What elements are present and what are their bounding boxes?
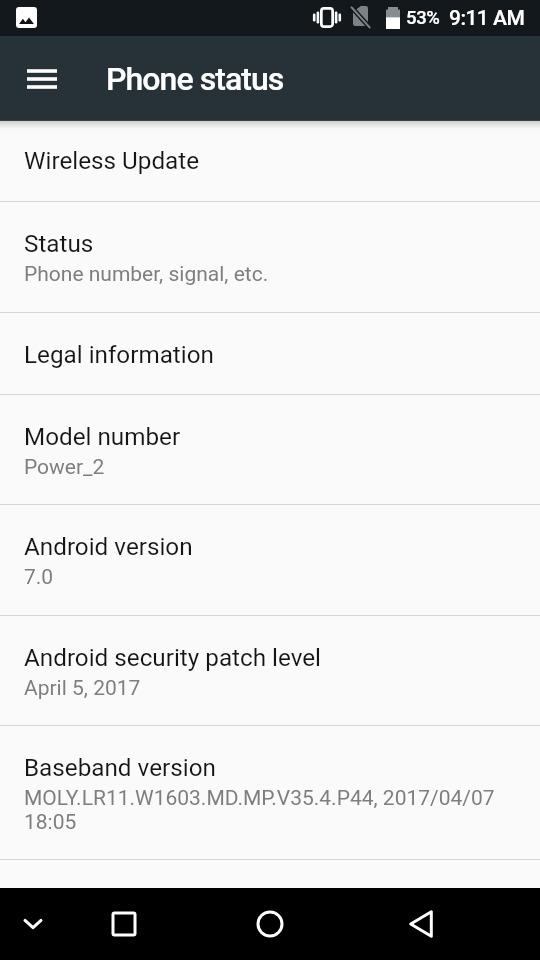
button[interactable]: Home <box>236 888 304 960</box>
staticText: April 5, 2017 <box>24 676 141 701</box>
button[interactable]: Open navigation menu <box>13 50 70 107</box>
button[interactable]: Legal information <box>0 312 540 392</box>
button[interactable]: Status <box>0 201 540 310</box>
button[interactable]: Android security patch level <box>0 615 540 723</box>
staticText: Android version <box>24 533 193 561</box>
staticText: Android security patch level <box>24 644 322 672</box>
button[interactable]: Wireless Update <box>0 120 540 200</box>
staticText: Phone number, signal, etc. <box>24 262 269 287</box>
staticText: 9:11 AM <box>449 6 525 31</box>
button[interactable]: Baseband version <box>0 725 540 857</box>
button[interactable]: Model number <box>0 394 540 502</box>
staticText: Model number <box>24 423 181 451</box>
button[interactable]: Hide keyboard <box>0 888 67 960</box>
staticText: Power_2 <box>24 455 105 480</box>
staticText: Wireless Update <box>24 147 200 175</box>
staticText: Legal information <box>24 341 214 369</box>
button[interactable]: Android version <box>0 504 540 613</box>
button[interactable]: Back <box>387 888 455 960</box>
staticText: 7.0 <box>24 565 54 590</box>
button[interactable]: Recent apps <box>90 888 158 960</box>
staticText: 53% <box>406 7 440 29</box>
staticText: Phone status <box>106 60 284 98</box>
staticText: Status <box>24 230 94 258</box>
staticText: Baseband version <box>24 754 216 782</box>
staticText: MOLY.LR11.W1603.MD.MP.V35.4.P44, 2017/04… <box>24 786 524 834</box>
